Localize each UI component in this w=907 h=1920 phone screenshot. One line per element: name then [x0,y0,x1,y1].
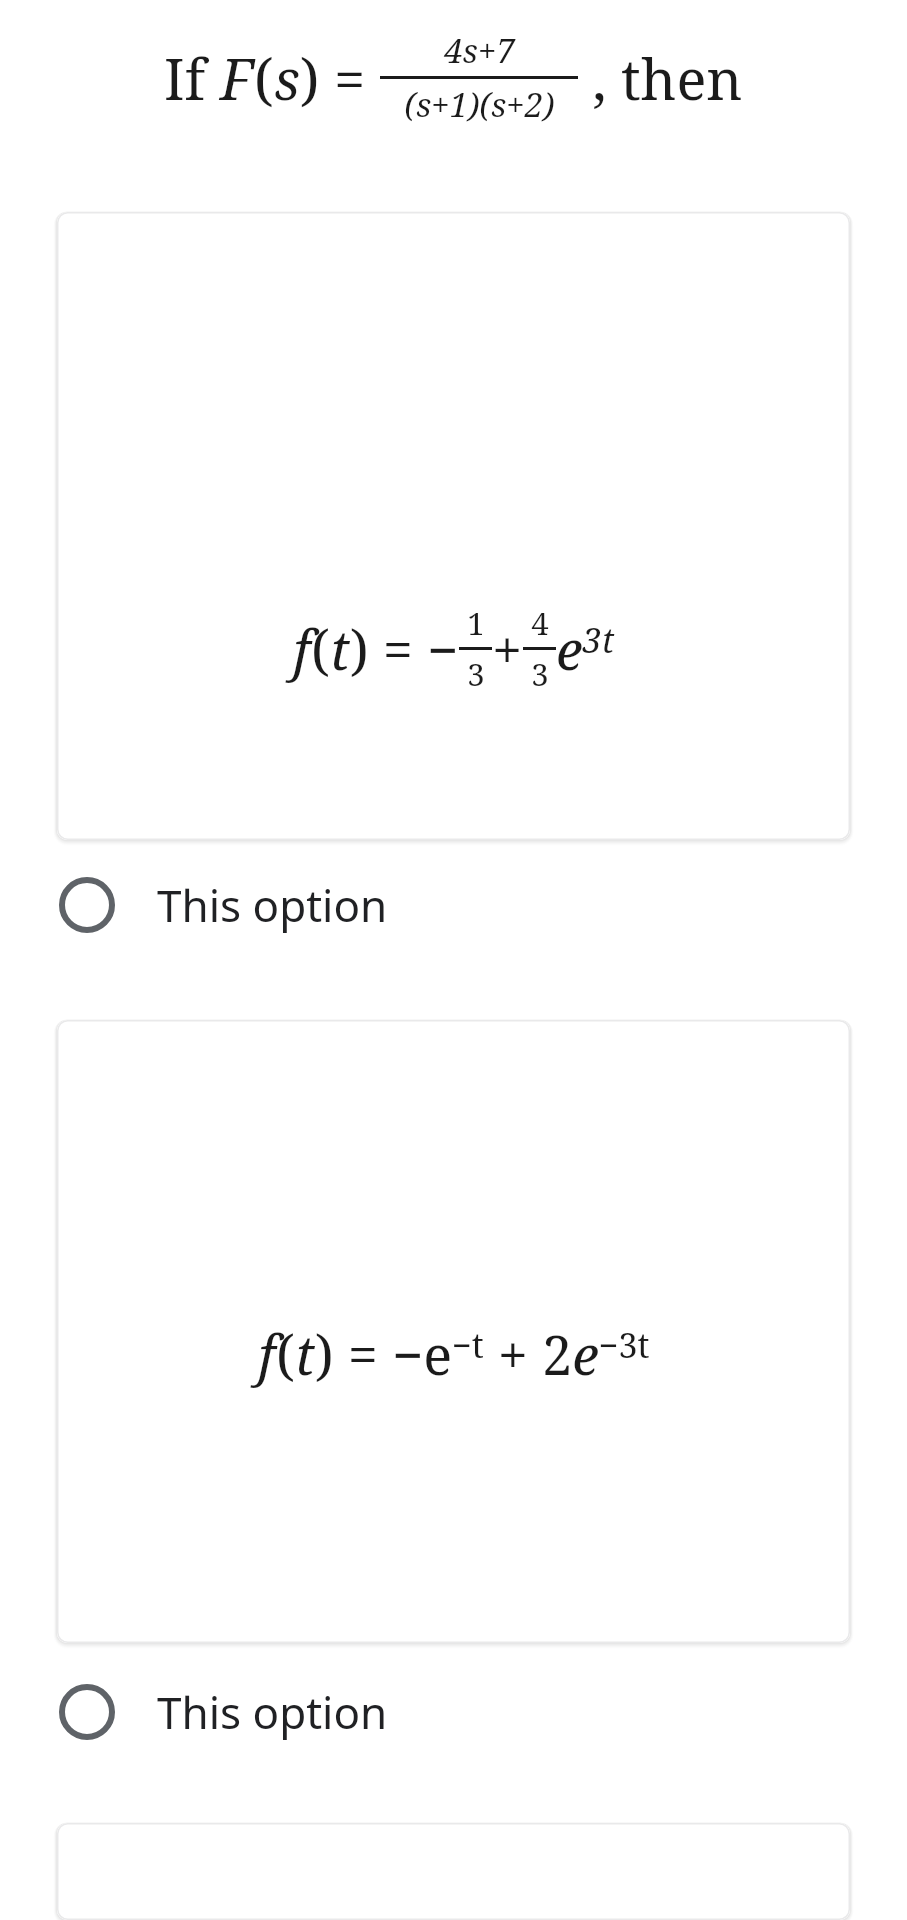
button[interactable]: f [57,1020,850,1643]
staticText: f [293,612,311,686]
staticText: ) = − [350,612,459,686]
staticText: , then [578,40,743,116]
staticText: This option [157,875,388,935]
button[interactable] [57,1823,850,1920]
staticText: This option [157,1682,388,1742]
staticText: t [295,1317,315,1391]
staticText: 1 [467,602,485,644]
button[interactable]: This option [0,1669,907,1755]
staticText: ) = [300,40,380,116]
staticText: 4s+7 [444,28,515,73]
staticText: (s+1)(s+2) [404,82,555,127]
staticText: ) = −e−t + 2e−3t [315,1317,650,1391]
staticText: 3 [531,653,549,695]
staticText: + [492,612,523,686]
staticText: f [258,1317,276,1391]
button[interactable]: f [57,212,850,840]
staticText: ( [254,40,274,116]
staticText: e3t [556,612,615,686]
staticText: t [330,612,350,686]
staticText: 3 [467,653,485,695]
staticText: F [220,40,254,116]
staticText: 4 [531,602,549,644]
staticText: s [274,40,300,116]
staticText: If [164,40,220,116]
staticText: ( [311,612,330,686]
staticText: ( [276,1317,295,1391]
button[interactable]: This option [0,862,907,948]
